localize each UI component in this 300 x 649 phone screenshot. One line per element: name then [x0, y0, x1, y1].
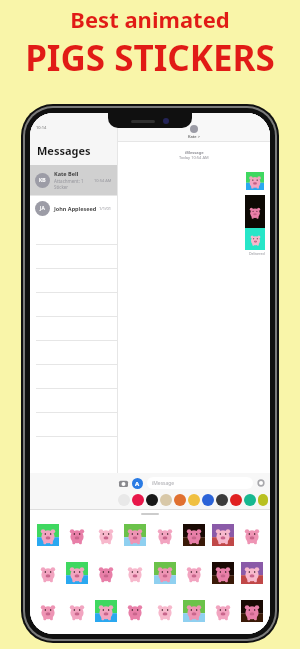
button[interactable]: [245, 170, 265, 192]
button[interactable]: Sticker pack: [258, 494, 268, 506]
button[interactable]: Sticker pack: [174, 494, 186, 506]
staticText: John Appleseed: [54, 205, 97, 212]
button[interactable]: [245, 228, 265, 250]
button[interactable]: Pig sticker 9: [35, 560, 61, 586]
staticText: A: [135, 480, 140, 488]
staticText: Delivered: [249, 251, 265, 256]
staticText: Today 10:54 AM: [179, 155, 209, 160]
button[interactable]: Sticker pack: [146, 494, 158, 506]
button[interactable]: Pig sticker 12: [122, 560, 148, 586]
button[interactable]: Pig sticker 24: [239, 598, 265, 624]
staticText: Attachment: 1 Sticker: [54, 178, 94, 190]
button[interactable]: Pig sticker 7: [210, 522, 236, 548]
staticText: 10:14: [36, 125, 47, 130]
button[interactable]: Pig sticker 13: [152, 560, 178, 586]
staticText: KB: [39, 177, 46, 184]
staticText: Kate >: [188, 134, 200, 139]
button[interactable]: Pig sticker 20: [122, 598, 148, 624]
button[interactable]: Pig sticker 17: [35, 598, 61, 624]
staticText: Best animated: [70, 4, 230, 34]
button[interactable]: JA: [30, 196, 117, 221]
button[interactable]: Sticker pack: [244, 494, 256, 506]
staticText: 10:54 AM: [94, 178, 112, 183]
button[interactable]: Pig sticker 19: [93, 598, 119, 624]
button[interactable]: Pig sticker 10: [64, 560, 90, 586]
button[interactable]: Pig sticker 11: [93, 560, 119, 586]
button[interactable]: Sticker pack: [160, 494, 172, 506]
button[interactable]: Sticker pack: [230, 494, 242, 506]
button[interactable]: Pig sticker 6: [181, 522, 207, 548]
button[interactable]: App Store: [132, 478, 143, 489]
staticText: PIGS STICKERS: [25, 34, 275, 82]
button[interactable]: Pig sticker 1: [35, 522, 61, 548]
staticText: iMessage: [152, 480, 175, 487]
button[interactable]: Sticker pack: [132, 494, 144, 506]
button[interactable]: Send: [256, 478, 266, 488]
button[interactable]: Sticker pack: [188, 494, 200, 506]
staticText: iMessage: [185, 150, 204, 155]
button[interactable]: Pig sticker 3: [93, 522, 119, 548]
button[interactable]: Pig sticker 22: [181, 598, 207, 624]
button[interactable]: Pig sticker 23: [210, 598, 236, 624]
button[interactable]: Pig sticker 21: [152, 598, 178, 624]
button[interactable]: [245, 195, 265, 228]
button[interactable]: Sticker pack: [118, 494, 130, 506]
staticText: Messages: [37, 143, 91, 158]
button[interactable]: KB: [30, 165, 117, 195]
button[interactable]: iMessage: [147, 477, 253, 489]
button[interactable]: Pig sticker 16: [239, 560, 265, 586]
button[interactable]: Pig sticker 2: [64, 522, 90, 548]
button[interactable]: Camera: [118, 478, 129, 489]
staticText: 1/1/01: [99, 206, 112, 211]
button[interactable]: Pig sticker 15: [210, 560, 236, 586]
button[interactable]: Sticker pack: [216, 494, 228, 506]
button[interactable]: Pig sticker 4: [122, 522, 148, 548]
button[interactable]: Pig sticker 14: [181, 560, 207, 586]
staticText: Kate Bell: [54, 170, 79, 177]
staticText: JA: [40, 205, 45, 212]
button[interactable]: Pig sticker 8: [239, 522, 265, 548]
button[interactable]: Pig sticker 5: [152, 522, 178, 548]
button[interactable]: Pig sticker 18: [64, 598, 90, 624]
button[interactable]: Sticker pack: [202, 494, 214, 506]
